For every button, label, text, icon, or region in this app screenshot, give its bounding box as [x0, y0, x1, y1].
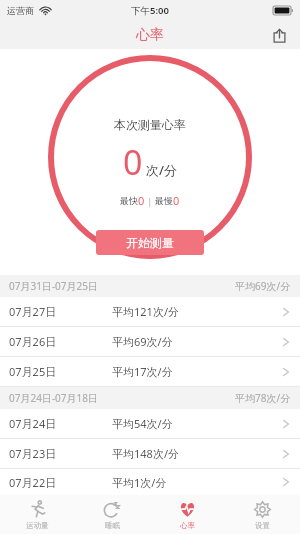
staticText: 运营商 — [7, 5, 34, 16]
button[interactable]: 睡眠 — [75, 495, 150, 534]
staticText: 07月31日-07月25日 — [9, 279, 98, 293]
staticText: 平均17次/分 — [112, 364, 173, 379]
button[interactable]: 07月25日 — [0, 357, 300, 387]
staticText: 心率 — [180, 521, 195, 530]
staticText: 平均148次/分 — [112, 446, 179, 461]
staticText: 07月22日 — [9, 475, 57, 490]
staticText: 平均54次/分 — [112, 416, 173, 431]
staticText: 下午5:00 — [131, 4, 169, 17]
staticText: 运动量 — [26, 521, 49, 530]
staticText: 开始测量 — [126, 235, 174, 250]
staticText: 07月27日 — [9, 304, 57, 319]
staticText: 0 — [173, 193, 180, 208]
button[interactable]: 设置 — [225, 495, 300, 534]
button[interactable]: 开始测量 — [96, 230, 204, 255]
button[interactable]: 07月26日 — [0, 327, 300, 357]
staticText: 07月25日 — [9, 364, 57, 379]
staticText: 睡眠 — [105, 521, 120, 530]
button[interactable]: Share — [266, 22, 292, 48]
staticText: 平均1次/分 — [112, 475, 167, 490]
button[interactable]: 07月27日 — [0, 297, 300, 327]
button[interactable]: 07月23日 — [0, 439, 300, 469]
staticText: | — [145, 195, 155, 207]
staticText: 07月26日 — [9, 334, 57, 349]
button[interactable]: 心率 — [150, 495, 225, 534]
staticText: 最快 — [120, 195, 138, 206]
staticText: 平均78次/分 — [235, 391, 291, 405]
button[interactable]: 运动量 — [0, 495, 75, 534]
button[interactable]: 07月22日 — [0, 469, 300, 495]
staticText: 0 — [138, 193, 145, 208]
staticText: 平均69次/分 — [112, 334, 173, 349]
button[interactable]: 07月24日 — [0, 409, 300, 439]
staticText: 本次测量心率 — [114, 117, 186, 132]
staticText: 平均69次/分 — [235, 279, 291, 293]
staticText: 07月24日 — [9, 416, 57, 431]
staticText: 次/分 — [146, 161, 178, 179]
staticText: 07月23日 — [9, 446, 57, 461]
staticText: 设置 — [255, 521, 270, 530]
staticText: 07月24日-07月18日 — [9, 391, 98, 405]
staticText: 心率 — [136, 26, 164, 44]
staticText: 0 — [123, 139, 143, 185]
staticText: 最慢 — [155, 195, 173, 206]
staticText: 平均121次/分 — [112, 304, 179, 319]
